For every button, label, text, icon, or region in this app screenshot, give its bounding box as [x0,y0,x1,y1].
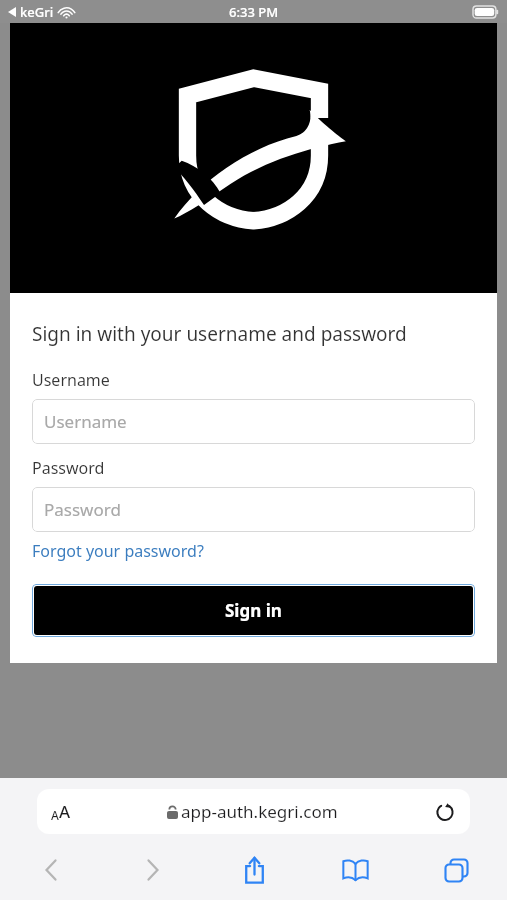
staticText: A [59,800,71,823]
button[interactable]: Sign in [34,586,473,635]
button[interactable]: Username [32,399,475,444]
staticText: keGri [20,3,54,21]
staticText: Sign in [225,599,282,622]
button[interactable]: Reload [434,801,456,823]
staticText: Sign in with your username and password [32,321,407,347]
button[interactable]: Bookmarks [305,846,406,894]
button[interactable]: Back [0,846,102,894]
button[interactable]: Password [32,487,475,532]
staticText: app-auth.kegri.com [181,800,338,823]
staticText: Forgot your password? [32,540,204,562]
button[interactable]: Share [204,846,305,894]
button[interactable]: Forward [102,846,204,894]
button[interactable]: Tabs [406,846,507,894]
staticText: Password [44,498,121,521]
staticText: 6:33 PM [229,3,279,21]
staticText: A [51,807,59,823]
staticText: Username [32,369,110,391]
staticText: Password [32,457,105,479]
staticText: Username [44,410,127,433]
button[interactable]: A [37,789,470,834]
button[interactable]: Forgot your password? [32,540,204,562]
